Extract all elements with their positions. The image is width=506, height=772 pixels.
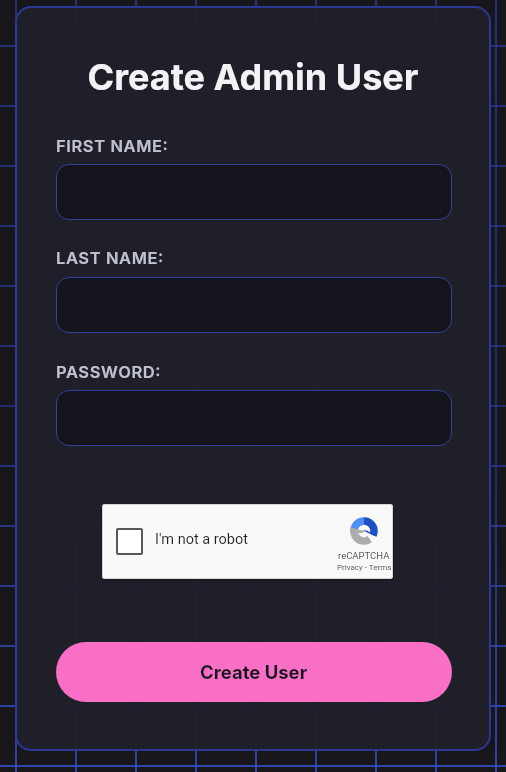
button[interactable]: [116, 528, 143, 555]
button[interactable]: [56, 164, 452, 220]
staticText: LAST NAME:: [56, 248, 164, 268]
staticText: FIRST NAME:: [56, 136, 169, 156]
button[interactable]: I'm not a robot: [102, 504, 393, 579]
staticText: I'm not a robot: [155, 531, 248, 548]
staticText: Create Admin User: [15, 55, 491, 99]
staticText: Privacy - Terms: [337, 563, 392, 572]
staticText: Create User: [200, 661, 308, 683]
staticText: PASSWORD:: [56, 362, 162, 382]
button[interactable]: [56, 277, 452, 333]
button[interactable]: [56, 390, 452, 446]
staticText: reCAPTCHA: [338, 550, 390, 561]
button[interactable]: Create User: [56, 642, 452, 702]
